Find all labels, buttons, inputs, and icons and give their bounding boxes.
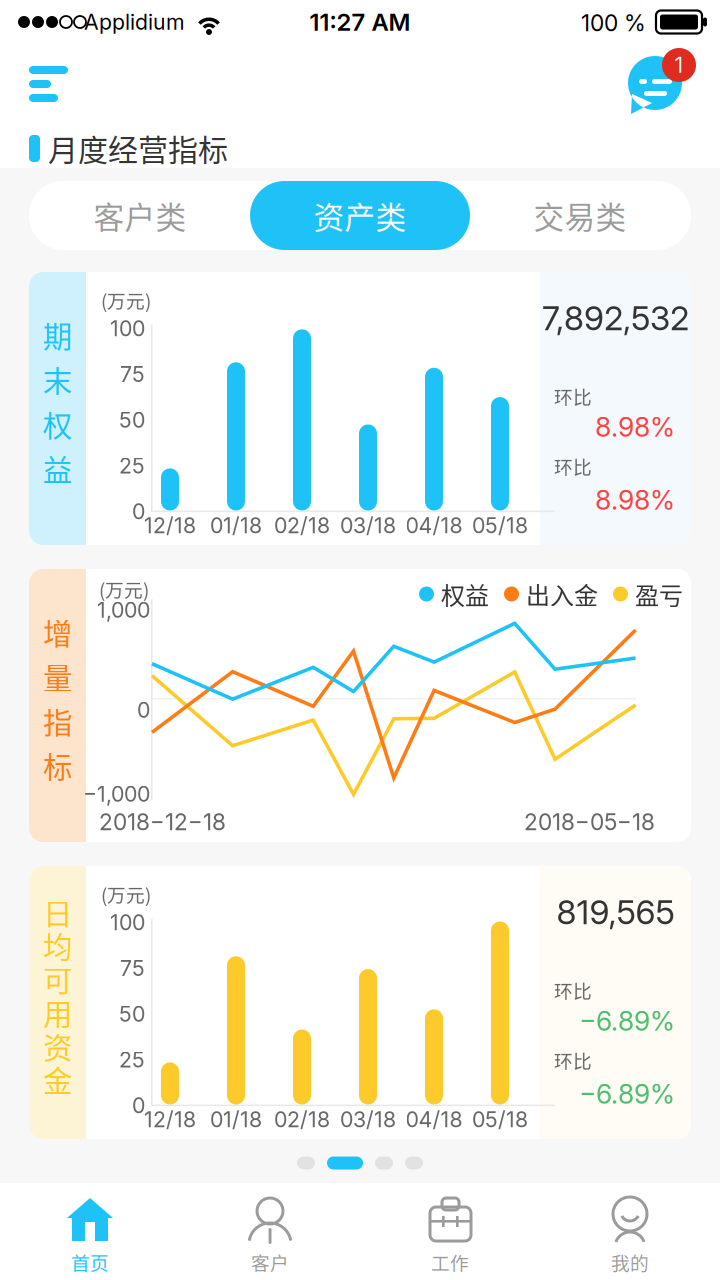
staticText: 03/18 <box>340 513 396 538</box>
staticText: 03/18 <box>340 1107 396 1132</box>
staticText: 1,000 <box>97 597 150 623</box>
staticText: 04/18 <box>405 1107 462 1132</box>
staticText: 可 <box>43 957 72 1000</box>
staticText: 首页 <box>71 1248 109 1275</box>
staticText: 用 <box>43 991 72 1033</box>
button[interactable]: 交易类 <box>470 181 690 250</box>
staticText: 环比 <box>554 382 592 409</box>
staticText: 100 <box>110 316 145 341</box>
staticText: 资产类 <box>313 193 406 238</box>
staticText: 819,565 <box>556 892 674 932</box>
staticText: 工作 <box>431 1248 469 1275</box>
button[interactable]: Menu <box>12 48 88 110</box>
staticText: 权 <box>43 402 72 445</box>
staticText: 客户 <box>251 1248 289 1275</box>
staticText: (万元) <box>99 575 149 602</box>
staticText: 月度经营指标 <box>48 126 228 170</box>
staticText: (万元) <box>101 880 151 907</box>
staticText: 末 <box>43 358 72 400</box>
staticText: 8.98% <box>595 411 675 443</box>
staticText: 环比 <box>554 1046 592 1073</box>
staticText: 0 <box>137 697 150 723</box>
staticText: −1,000 <box>83 781 150 807</box>
staticText: 01/18 <box>210 513 262 538</box>
staticText: 8.98% <box>595 484 675 516</box>
staticText: 我的 <box>611 1248 649 1275</box>
staticText: 100 % <box>581 9 646 37</box>
staticText: 金 <box>43 1058 72 1100</box>
staticText: 02/18 <box>274 513 330 538</box>
staticText: 交易类 <box>533 193 626 238</box>
staticText: 25 <box>119 453 145 479</box>
button[interactable]: 资产类 <box>250 181 470 250</box>
staticText: 0 <box>132 499 145 524</box>
button[interactable]: 我的 <box>540 1183 720 1280</box>
staticText: 12/18 <box>144 1107 196 1132</box>
staticText: 2018−05−18 <box>524 808 655 836</box>
staticText: 12/18 <box>144 513 196 538</box>
staticText: 标 <box>43 744 72 786</box>
staticText: −6.89% <box>579 1005 675 1037</box>
button[interactable]: 首页 <box>0 1183 180 1280</box>
staticText: 指 <box>43 699 72 742</box>
button[interactable]: 客户 <box>180 1183 360 1280</box>
staticText: 资 <box>43 1024 72 1067</box>
staticText: 02/18 <box>274 1107 330 1132</box>
staticText: 益 <box>43 447 72 489</box>
staticText: 1 <box>674 52 683 78</box>
staticText: 环比 <box>554 452 592 479</box>
button[interactable]: 客户类 <box>30 181 250 250</box>
staticText: Applidium <box>84 9 185 35</box>
staticText: −6.89% <box>579 1078 675 1110</box>
staticText: 25 <box>119 1047 145 1073</box>
staticText: 05/18 <box>472 513 528 538</box>
staticText: 量 <box>43 655 72 697</box>
staticText: (万元) <box>101 286 151 313</box>
staticText: 100 <box>110 910 145 935</box>
staticText: 客户类 <box>93 193 186 238</box>
staticText: 04/18 <box>405 513 462 538</box>
staticText: 期 <box>43 313 72 356</box>
staticText: 2018−12−18 <box>99 808 226 836</box>
staticText: 75 <box>120 955 145 981</box>
staticText: 日 <box>43 890 72 933</box>
staticText: 05/18 <box>472 1107 528 1132</box>
staticText: 50 <box>119 1001 145 1027</box>
staticText: 权益 <box>441 577 489 611</box>
staticText: 增 <box>43 610 72 653</box>
button[interactable]: Messages <box>608 44 704 114</box>
button[interactable]: 工作 <box>360 1183 540 1280</box>
staticText: 7,892,532 <box>542 298 689 338</box>
staticText: 出入金 <box>526 577 598 611</box>
staticText: 环比 <box>554 976 592 1003</box>
staticText: 0 <box>132 1093 145 1118</box>
staticText: 均 <box>43 924 72 966</box>
staticText: 11:27 AM <box>309 7 410 36</box>
staticText: 75 <box>120 361 145 387</box>
staticText: 盈亏 <box>635 577 683 611</box>
staticText: 01/18 <box>210 1107 262 1132</box>
staticText: 50 <box>119 407 145 433</box>
